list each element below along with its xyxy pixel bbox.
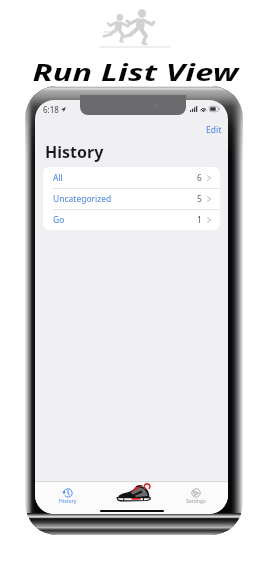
button[interactable]: Go (43, 209, 220, 230)
button[interactable]: Uncategorized (43, 188, 220, 209)
staticText: Go (53, 214, 65, 226)
staticText: All (53, 172, 63, 184)
button[interactable]: Start a run (100, 482, 164, 505)
button[interactable]: All (43, 167, 220, 188)
staticText: History (45, 141, 104, 163)
staticText: 6 (197, 172, 202, 184)
button[interactable]: Settings (164, 482, 228, 505)
staticText: History (59, 497, 77, 504)
staticText: 6:18 (43, 104, 59, 115)
button[interactable]: History (35, 482, 100, 505)
staticText: Settings (186, 497, 206, 504)
staticText: Run List View (0, 55, 265, 88)
staticText: 1 (197, 214, 202, 226)
button[interactable]: Edit (200, 122, 228, 138)
staticText: Uncategorized (53, 193, 112, 205)
staticText: 5 (197, 193, 202, 205)
